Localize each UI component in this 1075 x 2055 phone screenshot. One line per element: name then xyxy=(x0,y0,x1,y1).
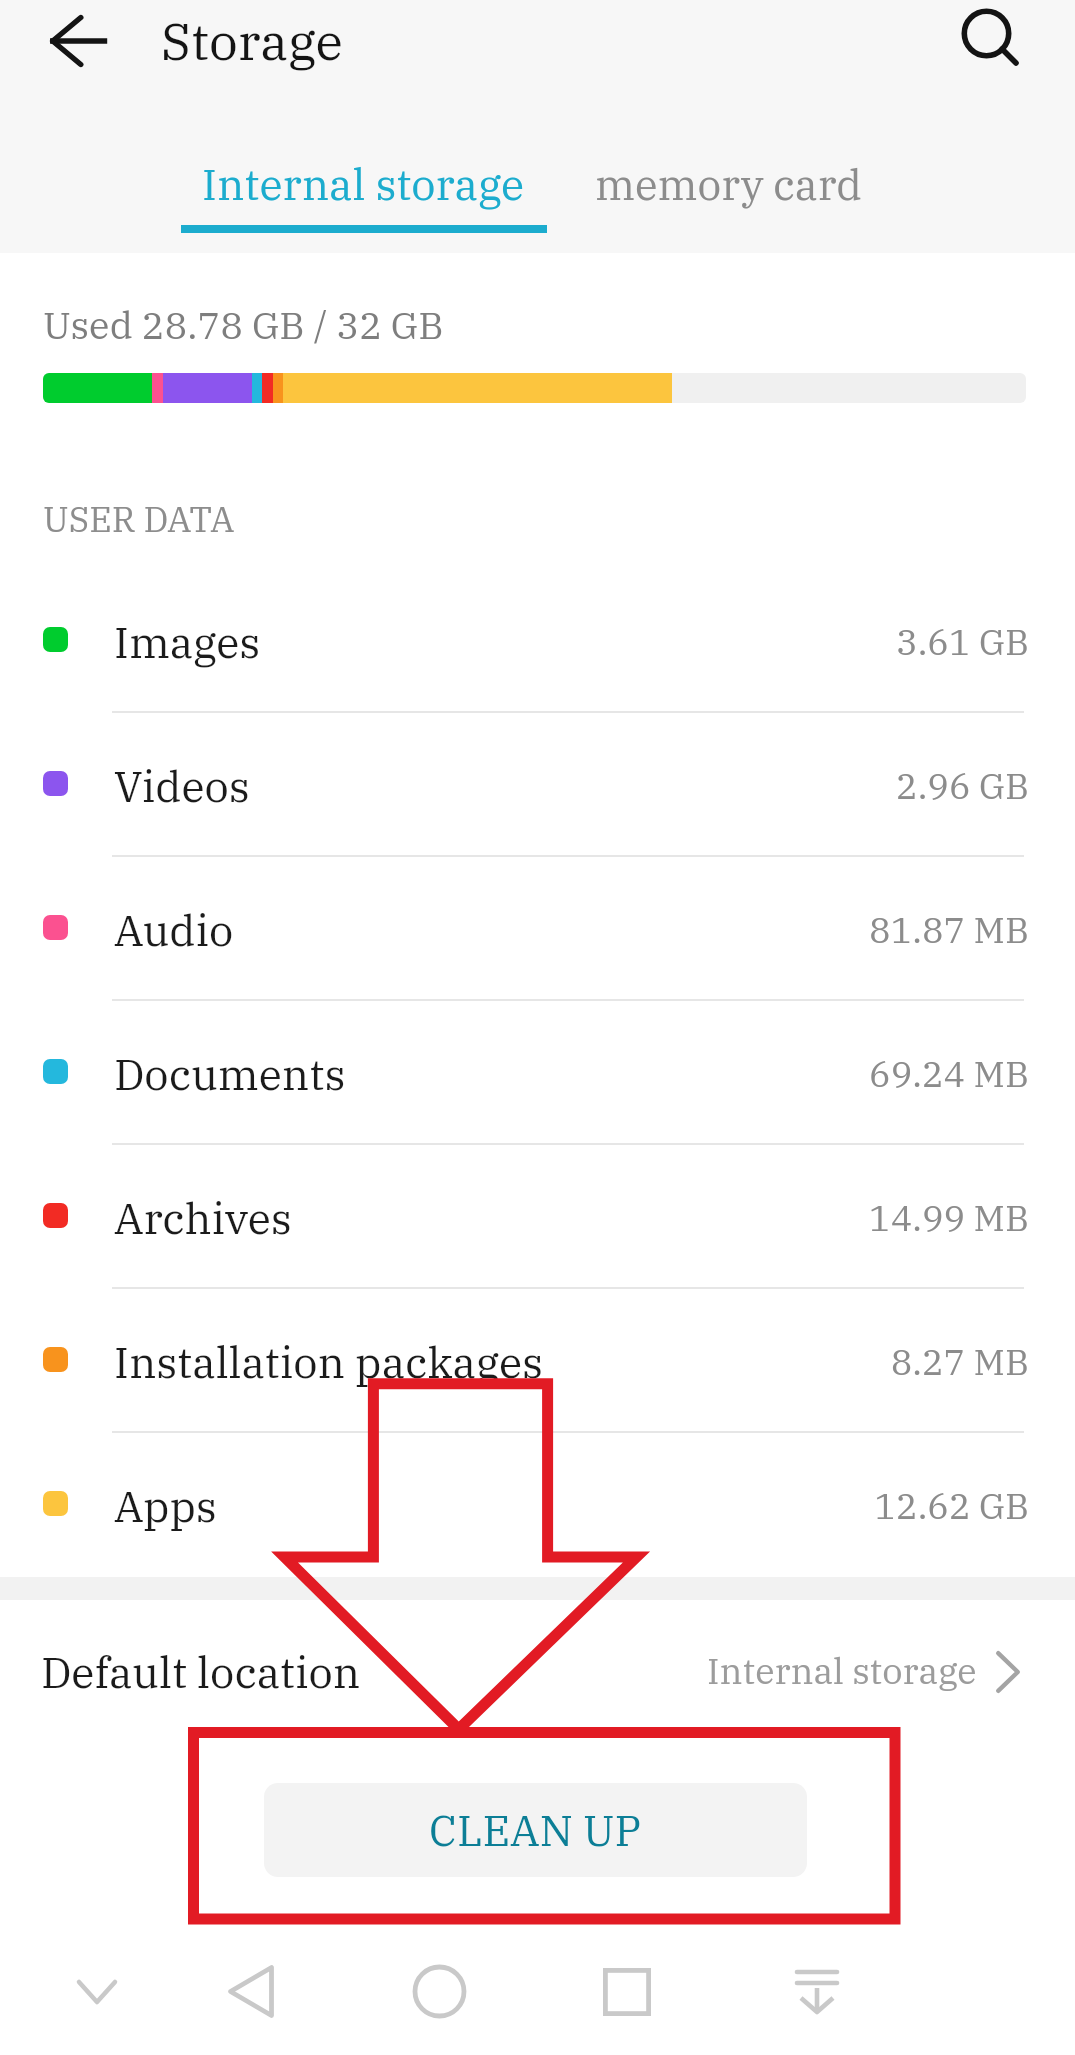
button[interactable]: memory card xyxy=(560,138,950,248)
staticText: Internal storage xyxy=(707,1647,977,1694)
staticText: Videos xyxy=(114,758,250,814)
button[interactable]: Apps xyxy=(0,1432,1075,1576)
staticText: Internal storage xyxy=(202,156,525,212)
staticText: 14.99 MB xyxy=(0,1194,1029,1241)
staticText: 3.61 GB xyxy=(0,618,1029,665)
staticText: Archives xyxy=(114,1190,292,1246)
staticText: 8.27 MB xyxy=(0,1338,1029,1385)
button[interactable]: Internal storage xyxy=(110,138,618,248)
button[interactable]: Collapse keyboard xyxy=(26,1921,167,2055)
button[interactable]: Recents xyxy=(556,1921,697,2055)
staticText: Audio xyxy=(114,902,234,958)
button[interactable]: Search xyxy=(950,0,1032,79)
staticText: Apps xyxy=(114,1478,217,1534)
staticText: Documents xyxy=(114,1046,346,1102)
staticText: memory card xyxy=(595,157,862,212)
staticText: CLEAN UP xyxy=(429,1802,642,1858)
button[interactable]: Audio xyxy=(0,856,1075,1000)
staticText: Installation packages xyxy=(114,1334,543,1390)
button[interactable]: Back xyxy=(180,1921,321,2055)
staticText: Used 28.78 GB / 32 GB xyxy=(43,300,444,349)
button[interactable]: Hide navigation bar xyxy=(746,1921,887,2055)
button[interactable]: Archives xyxy=(0,1144,1075,1288)
button[interactable]: Installation packages xyxy=(0,1288,1075,1432)
button[interactable]: Videos xyxy=(0,712,1075,856)
staticText: 2.96 GB xyxy=(0,762,1029,809)
staticText: 12.62 GB xyxy=(0,1482,1029,1529)
button[interactable]: Default location xyxy=(0,1605,1075,1750)
staticText: 69.24 MB xyxy=(0,1050,1029,1097)
button[interactable]: Home xyxy=(369,1921,510,2055)
staticText: USER DATA xyxy=(43,496,235,542)
staticText: Default location xyxy=(41,1644,361,1700)
button[interactable]: Documents xyxy=(0,1000,1075,1144)
button[interactable]: Back xyxy=(37,0,118,81)
staticText: Storage xyxy=(161,8,343,74)
staticText: 81.87 MB xyxy=(0,906,1029,953)
button[interactable]: Images xyxy=(0,568,1075,712)
staticText: Images xyxy=(114,614,261,670)
button[interactable]: CLEAN UP xyxy=(264,1783,807,1877)
